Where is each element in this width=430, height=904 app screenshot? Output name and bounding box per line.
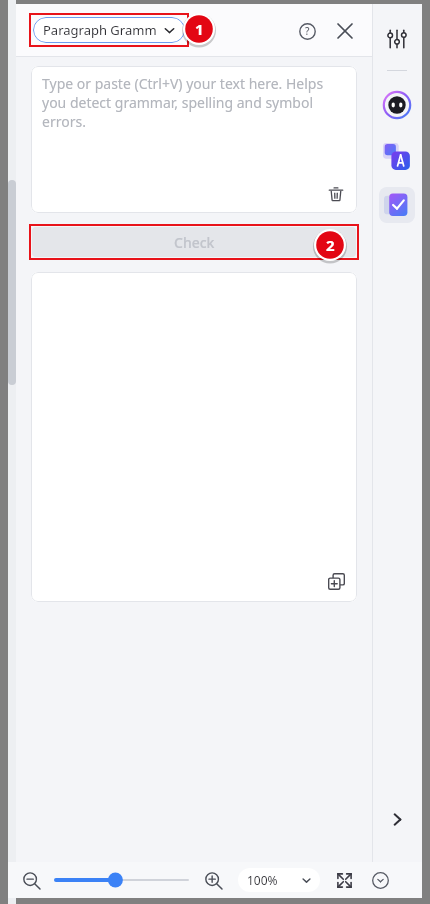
button[interactable]: Zoom in [198, 865, 228, 895]
staticText: 1 [195, 19, 204, 39]
button[interactable]: Copy result [31, 272, 357, 602]
button[interactable]: Copy result [321, 566, 351, 596]
button[interactable]: 100% [238, 868, 320, 892]
button[interactable]: Type or paste (Ctrl+V) your text here. H… [31, 66, 357, 213]
button[interactable]: More options [366, 866, 394, 894]
button[interactable]: Grammar check [379, 187, 415, 223]
staticText: Type or paste (Ctrl+V) your text here. H… [42, 74, 347, 131]
staticText: 2 [326, 235, 335, 255]
staticText: 100% [247, 872, 302, 888]
button[interactable]: Settings [380, 22, 414, 56]
button[interactable]: Clear text [321, 179, 351, 209]
button[interactable]: Fit to screen [330, 866, 358, 894]
button[interactable]: Zoom out [16, 865, 46, 895]
button[interactable]: Paragraph Gramm [33, 17, 185, 43]
button[interactable]: Translate [379, 139, 415, 175]
button[interactable]: Help [292, 16, 322, 46]
staticText: Check [174, 233, 215, 252]
button[interactable]: AI assistant [379, 87, 415, 123]
button[interactable]: Check [32, 227, 356, 257]
staticText: Paragraph Gramm [43, 21, 164, 39]
button[interactable]: Close [330, 16, 360, 46]
button[interactable]: Expand panel [380, 802, 414, 836]
staticText: ? [305, 24, 310, 38]
